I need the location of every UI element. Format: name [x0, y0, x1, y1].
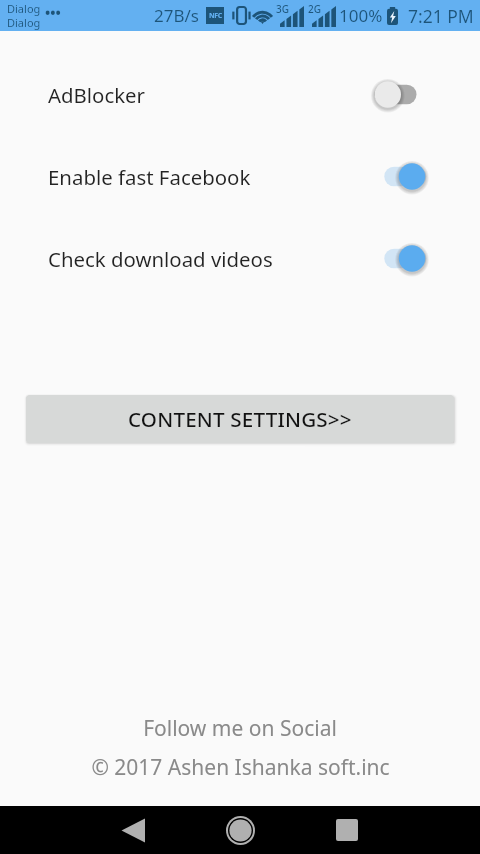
button[interactable]: Toggle on [370, 241, 430, 277]
button[interactable]: Enable fast Facebook [0, 136, 480, 218]
button[interactable]: Recents [321, 806, 373, 854]
staticText: ••• [45, 3, 61, 22]
staticText: AdBlocker [48, 81, 146, 109]
staticText: 27B/s [154, 4, 199, 27]
staticText: Follow me on Social [143, 714, 337, 743]
staticText: 7:21 PM [408, 4, 474, 28]
staticText: Dialog [7, 15, 41, 30]
staticText: Enable fast Facebook [48, 163, 251, 191]
staticText: 2G [308, 2, 321, 16]
button[interactable]: Back [107, 806, 159, 854]
button[interactable]: AdBlocker [0, 54, 480, 136]
staticText: © 2017 Ashen Ishanka soft.inc [91, 753, 390, 782]
button[interactable]: Toggle off [370, 77, 430, 113]
button[interactable]: Home [214, 806, 266, 854]
staticText: CONTENT SETTINGS>> [128, 405, 352, 433]
staticText: Check download videos [48, 245, 273, 273]
button[interactable]: Check download videos [0, 218, 480, 300]
staticText: NFC [209, 11, 222, 21]
button[interactable]: Toggle on [370, 159, 430, 195]
staticText: 100% [339, 4, 383, 27]
staticText: 3G [276, 2, 289, 16]
staticText: Dialog [7, 1, 41, 16]
button[interactable]: CONTENT SETTINGS>> [26, 395, 454, 443]
